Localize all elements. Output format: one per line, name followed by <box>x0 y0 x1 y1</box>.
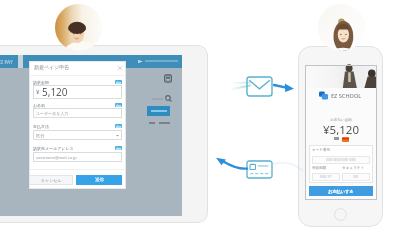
button[interactable]: ¥ <box>33 85 122 99</box>
staticText: 000 <box>353 175 359 179</box>
button[interactable]: Email notification <box>247 77 272 96</box>
staticText: ユーザー名を入力 <box>36 111 69 116</box>
staticText: セキュリティ <box>342 166 365 171</box>
staticText: EZ SCHOOL <box>331 92 362 100</box>
button[interactable] <box>147 106 170 116</box>
button[interactable]: 区分 <box>33 130 122 140</box>
staticText: 送信 <box>95 177 104 183</box>
button[interactable]: Close dialog <box>118 66 122 70</box>
staticText: 新規ペイジ申告 <box>34 64 70 70</box>
button[interactable]: ユーザー名を入力 <box>33 108 122 118</box>
button[interactable]: MM / YY <box>312 173 340 181</box>
staticText: 請求金額 <box>33 80 49 85</box>
staticText: 0000 0000 0000 0000 <box>326 158 356 162</box>
staticText: 必須 <box>116 147 122 150</box>
button[interactable]: username@mail.co.jp <box>33 152 122 162</box>
staticText: ¥5,120 <box>305 122 377 138</box>
staticText: 必須 <box>116 125 122 128</box>
staticText: 有効期限 <box>312 166 327 171</box>
button[interactable]: お支払いする <box>309 186 373 196</box>
staticText: キャンセル <box>41 178 62 183</box>
staticText: 区分 <box>36 133 45 138</box>
staticText: お支払い金額 <box>305 118 377 123</box>
staticText: お名前 <box>33 103 46 108</box>
staticText: username@mail.co.jp <box>36 155 77 160</box>
staticText: MM / YY <box>320 175 332 179</box>
staticText: 支払方法 <box>33 124 49 129</box>
staticText: EZ PAY <box>0 59 13 65</box>
staticText: カード番号 <box>312 148 331 153</box>
staticText: 必須 <box>116 81 122 84</box>
staticText: 請求先メールアドレス <box>33 146 74 151</box>
staticText: お支払いする <box>328 189 354 194</box>
button[interactable]: Credit card payment <box>247 161 272 178</box>
button[interactable]: 000 <box>342 173 370 181</box>
staticText: 必須 <box>116 104 122 107</box>
staticText: ¥ <box>36 88 40 96</box>
button[interactable]: 0000 0000 0000 0000 <box>312 156 370 164</box>
button[interactable]: キャンセル <box>29 175 73 185</box>
button[interactable]: 送信 <box>76 175 122 185</box>
staticText: 5,120 <box>42 85 68 99</box>
